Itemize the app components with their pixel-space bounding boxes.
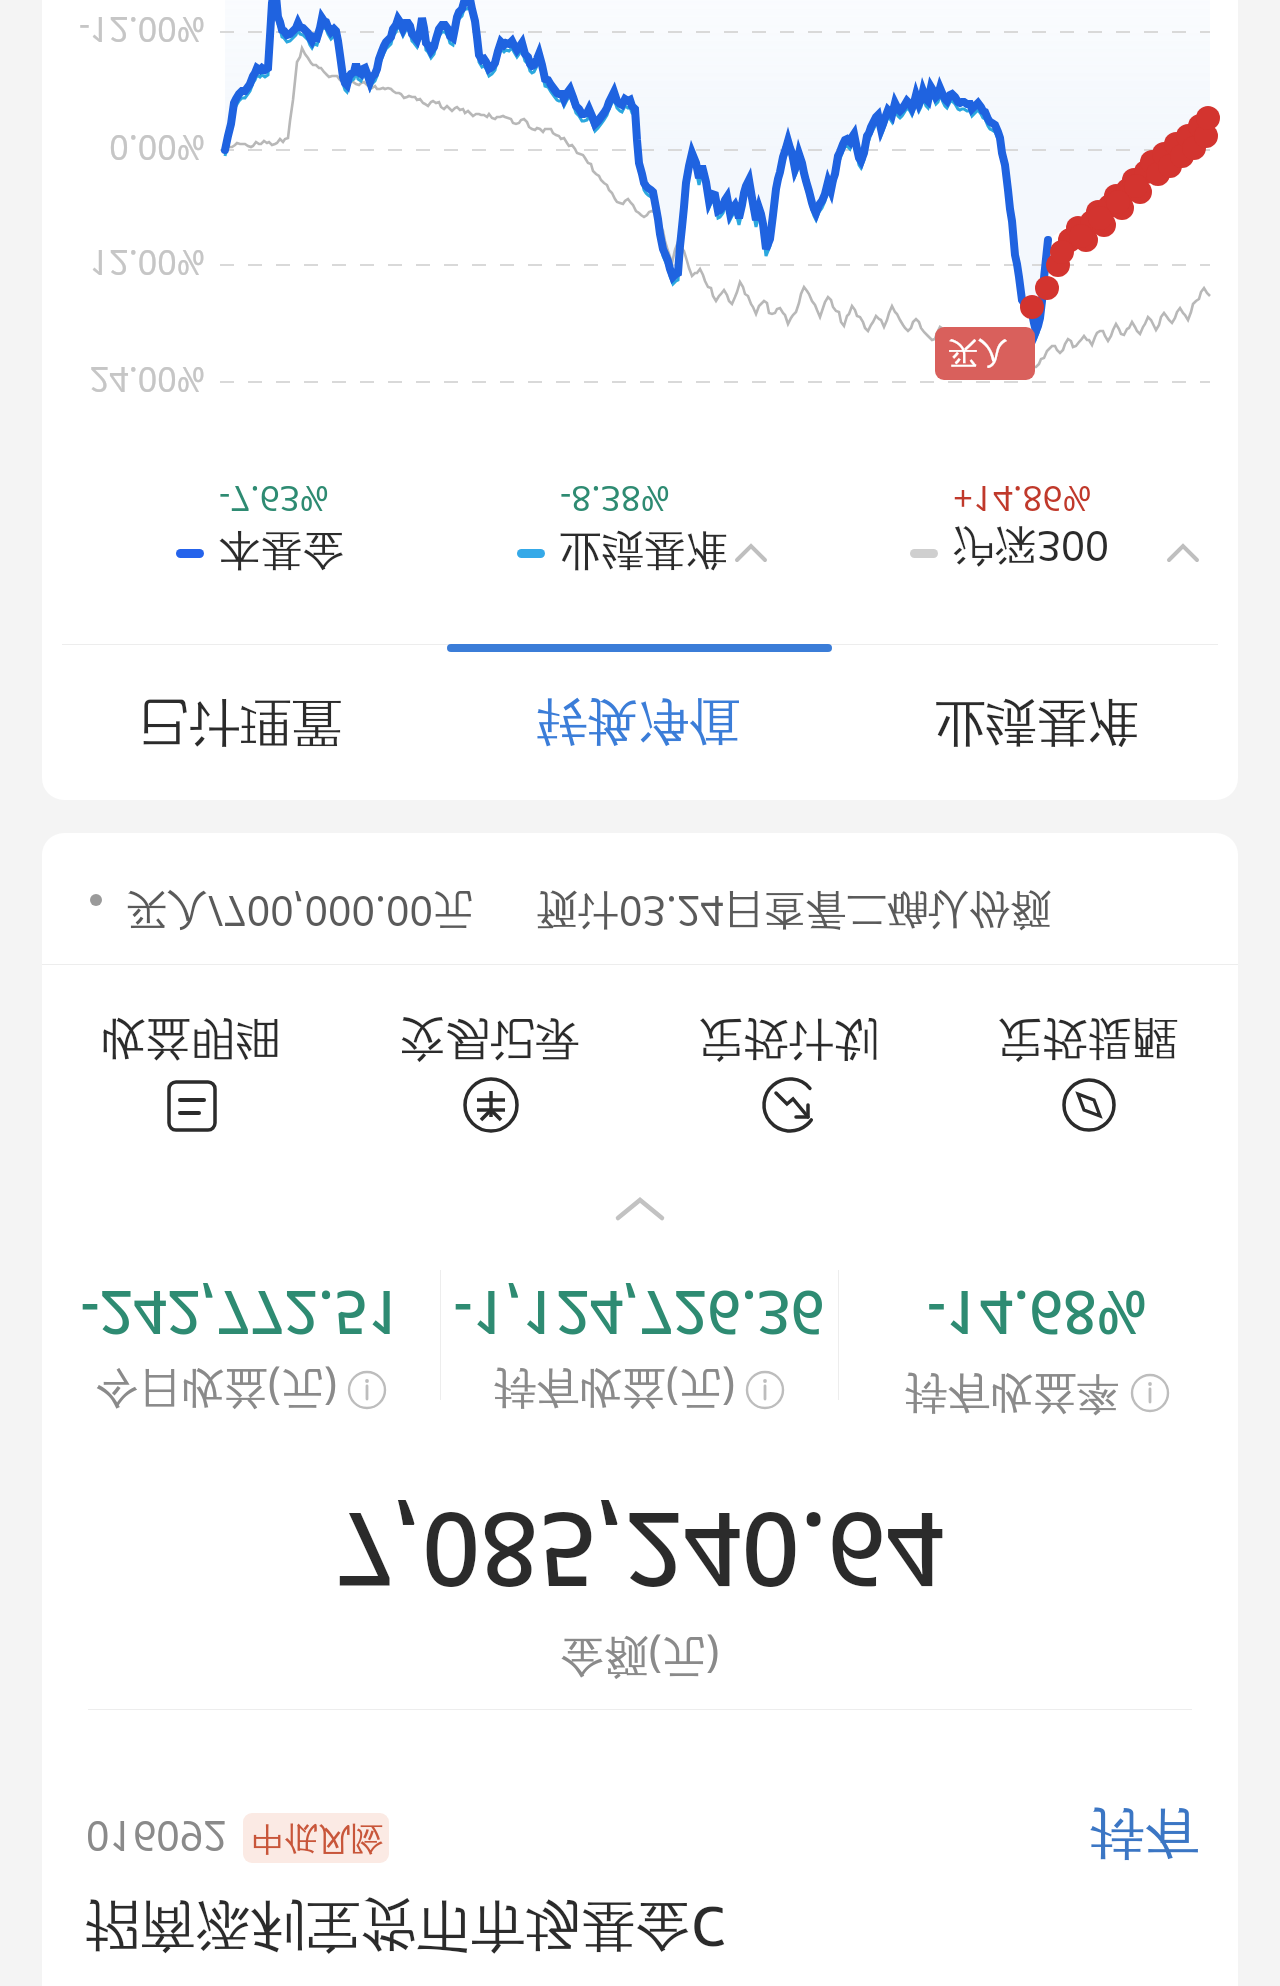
staticText: 中低风险	[252, 1818, 384, 1860]
staticText: 招商添利宝货币市场基金C	[86, 1891, 726, 1966]
staticText: 定投提醒	[939, 1010, 1238, 1067]
staticText: 定投计划	[640, 1010, 939, 1067]
button[interactable]	[42, 851, 1238, 951]
staticText: 业绩基准	[838, 690, 1236, 754]
staticText: 业绩基准	[560, 523, 728, 576]
staticText: 0.00%	[45, 125, 205, 171]
staticText: -14.68%	[838, 1274, 1236, 1354]
staticText: 转换净值	[440, 690, 838, 754]
staticText: 持有收益(元)	[494, 1361, 735, 1420]
staticText: -12.00%	[45, 7, 205, 53]
staticText: 持有收益率	[905, 1366, 1120, 1420]
staticText: 预计03.24日查看二确认份额	[537, 884, 1052, 940]
button[interactable]	[42, 1006, 341, 1156]
staticText: 买入/700,000.00元	[126, 884, 474, 940]
staticText: 买入	[948, 334, 1008, 372]
staticText: +14.86%	[953, 475, 1092, 523]
button[interactable]	[42, 645, 440, 790]
staticText: 今日收益(元)	[96, 1361, 337, 1420]
button[interactable]	[838, 645, 1236, 790]
staticText: 持有	[1090, 1799, 1200, 1868]
button[interactable]	[341, 1006, 640, 1156]
staticText: 本基金	[219, 523, 345, 576]
staticText: 7,085,240.64	[42, 1483, 1238, 1622]
staticText: 沪深300	[953, 519, 1110, 576]
staticText: -8.38%	[560, 475, 670, 523]
staticText: 收益明细	[42, 1010, 341, 1067]
staticText: -1,124,726.36	[440, 1274, 838, 1354]
staticText: -7.63%	[219, 475, 329, 523]
button[interactable]	[939, 1006, 1238, 1156]
button[interactable]	[900, 466, 1160, 586]
button[interactable]	[507, 466, 767, 586]
staticText: 24.00%	[45, 357, 205, 403]
button[interactable]	[640, 1006, 939, 1156]
button[interactable]: Expand	[590, 1184, 690, 1234]
staticText: -242,772.51	[42, 1274, 440, 1354]
button[interactable]	[166, 466, 426, 586]
button[interactable]	[440, 645, 838, 790]
button[interactable]	[243, 1813, 389, 1863]
staticText: 016092	[86, 1809, 227, 1865]
button[interactable]	[1070, 1804, 1210, 1874]
staticText: 金额(元)	[42, 1629, 1238, 1689]
staticText: 交易记录	[341, 1010, 640, 1067]
staticText: 12.00%	[45, 240, 205, 286]
staticText: 已计理置	[42, 690, 440, 754]
